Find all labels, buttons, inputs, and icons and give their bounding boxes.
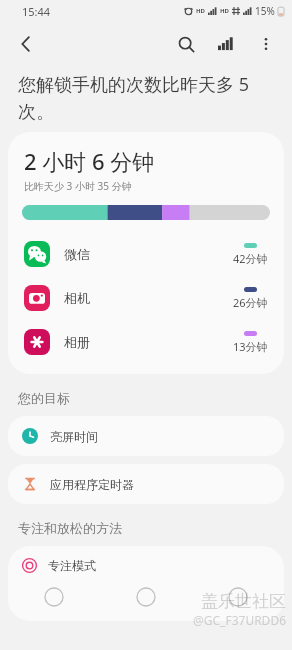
staticText: 盖乐世社区 <box>201 591 286 612</box>
button[interactable]: 2 小时 6 分钟 <box>8 132 284 374</box>
staticText: 专注和放松的方法 <box>18 520 122 536</box>
staticText: 您解锁手机的次数比昨天多 5 次。 <box>18 72 258 124</box>
button[interactable]: 应用程序定时器 <box>8 464 284 504</box>
button[interactable]: More options <box>246 24 286 64</box>
staticText: 比昨天少 3 小时 35 分钟 <box>24 179 132 193</box>
button[interactable]: 微信 <box>8 232 284 276</box>
button[interactable] <box>100 587 192 607</box>
button[interactable] <box>192 587 284 607</box>
staticText: 相机 <box>64 290 90 306</box>
button[interactable]: Statistics <box>206 24 246 64</box>
button[interactable]: Back <box>6 24 46 64</box>
button[interactable]: 相册 <box>8 320 284 364</box>
staticText: 42分钟 <box>233 251 268 266</box>
staticText: HD <box>220 7 229 15</box>
staticText: HD <box>196 7 205 15</box>
staticText: 26分钟 <box>233 295 268 310</box>
staticText: 亮屏时间 <box>50 429 98 444</box>
staticText: 相册 <box>64 334 90 350</box>
staticText: 13分钟 <box>233 339 268 354</box>
button[interactable]: 相机 <box>8 276 284 320</box>
staticText: 微信 <box>64 246 90 262</box>
button[interactable]: 亮屏时间 <box>8 416 284 456</box>
staticText: 您的目标 <box>18 390 70 406</box>
staticText: 专注模式 <box>48 558 96 573</box>
staticText: @GC_F37URDD6 <box>192 612 286 628</box>
button[interactable]: Search <box>166 24 206 64</box>
button[interactable] <box>8 587 100 607</box>
staticText: 15% <box>255 4 275 18</box>
staticText: 2 小时 6 分钟 <box>24 146 155 176</box>
staticText: 15:44 <box>22 4 51 19</box>
button[interactable]: 专注模式 <box>8 546 284 621</box>
staticText: 应用程序定时器 <box>50 477 134 492</box>
